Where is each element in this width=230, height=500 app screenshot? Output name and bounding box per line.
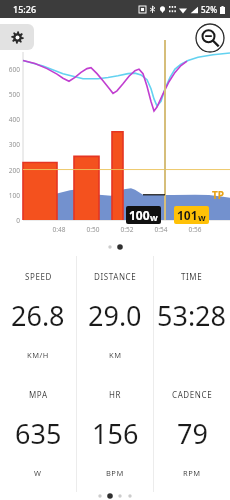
staticText: 15:26 [13, 3, 37, 15]
staticText: 0:56 [183, 225, 207, 234]
staticText: 0:48 [47, 225, 71, 234]
staticText: RPM [183, 468, 201, 478]
staticText: HR [109, 389, 122, 400]
staticText: 0:54 [149, 225, 173, 234]
staticText: w [150, 211, 158, 223]
button[interactable]: Settings [0, 24, 34, 50]
staticText: 79 [177, 415, 208, 452]
staticText: 600 [0, 65, 20, 74]
button[interactable]: CADENCE [154, 374, 230, 492]
staticText: 635 [15, 415, 62, 452]
staticText: 0:50 [81, 225, 105, 234]
staticText: 29.0 [88, 297, 142, 334]
button[interactable]: Zoom out [195, 23, 225, 53]
staticText: 0:52 [115, 225, 139, 234]
staticText: 101 [177, 207, 198, 223]
staticText: 26.8 [11, 297, 65, 334]
staticText: 53:28 [157, 297, 227, 334]
staticText: KM/H [27, 350, 49, 360]
staticText: 0 [0, 216, 20, 225]
button[interactable]: TIME [154, 256, 230, 374]
staticText: 100 [129, 207, 150, 223]
button[interactable]: HR [77, 374, 153, 492]
staticText: CADENCE [172, 389, 213, 400]
staticText: SPEED [25, 271, 52, 282]
button[interactable]: MPA [0, 374, 76, 492]
staticText: DISTANCE [94, 271, 137, 282]
staticText: 200 [0, 166, 20, 175]
staticText: 100 [0, 191, 20, 200]
button[interactable]: SPEED [0, 256, 76, 374]
staticText: 500 [0, 90, 20, 99]
staticText: 400 [0, 115, 20, 124]
staticText: TIME [181, 271, 203, 282]
staticText: 300 [0, 140, 20, 149]
button[interactable]: DISTANCE [77, 256, 153, 374]
staticText: MPA [29, 389, 48, 400]
staticText: 156 [92, 415, 139, 452]
staticText: 52% [201, 4, 217, 15]
staticText: W [34, 468, 42, 478]
staticText: KM [109, 350, 122, 360]
staticText: w [198, 211, 206, 223]
staticText: BPM [106, 468, 124, 478]
staticText: TP [212, 188, 224, 202]
